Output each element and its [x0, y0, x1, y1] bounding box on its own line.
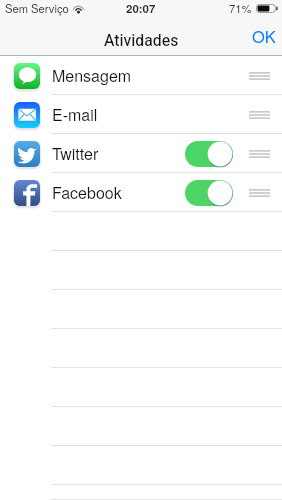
other: Reorder: [249, 150, 270, 158]
staticText: Mensagem: [52, 64, 132, 87]
other: Reorder: [249, 111, 270, 119]
staticText: OK: [252, 24, 276, 47]
button[interactable]: Facebook: [0, 173, 282, 212]
staticText: 71%: [229, 0, 252, 16]
button[interactable]: Toggle: [185, 180, 233, 206]
staticText: E-mail: [52, 103, 98, 126]
staticText: 20:07: [126, 0, 156, 16]
button[interactable]: E-mail: [0, 95, 282, 134]
staticText: Facebook: [52, 181, 122, 204]
other: Reorder: [249, 72, 270, 80]
button[interactable]: Toggle: [185, 141, 233, 167]
button[interactable]: Twitter: [0, 134, 282, 173]
button[interactable]: Mensagem: [0, 56, 282, 95]
other: Reorder: [249, 189, 270, 197]
staticText: Sem Serviço: [5, 0, 69, 16]
button[interactable]: OK: [238, 20, 282, 55]
staticText: Twitter: [52, 142, 99, 165]
staticText: Atividades: [104, 29, 179, 52]
